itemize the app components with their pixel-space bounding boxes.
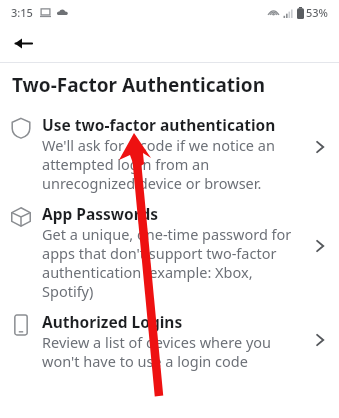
staticText: App Passwords: [42, 203, 158, 224]
staticText: 3:15: [11, 5, 33, 20]
staticText: We'll ask for a code if we notice an att…: [42, 135, 305, 193]
staticText: 53%: [306, 5, 328, 20]
button[interactable]: Authorized Logins: [0, 309, 339, 379]
staticText: Use two-factor authentication: [42, 114, 276, 135]
button[interactable]: Back: [6, 26, 40, 60]
staticText: Two-Factor Authentication: [12, 72, 266, 98]
staticText: Authorized Logins: [42, 311, 183, 332]
staticText: Get a unique, one-time password for apps…: [42, 224, 305, 301]
staticText: Review a list of devices where you won't…: [42, 332, 305, 371]
button[interactable]: App Passwords: [0, 201, 339, 309]
button[interactable]: Use two-factor authentication: [0, 112, 339, 201]
